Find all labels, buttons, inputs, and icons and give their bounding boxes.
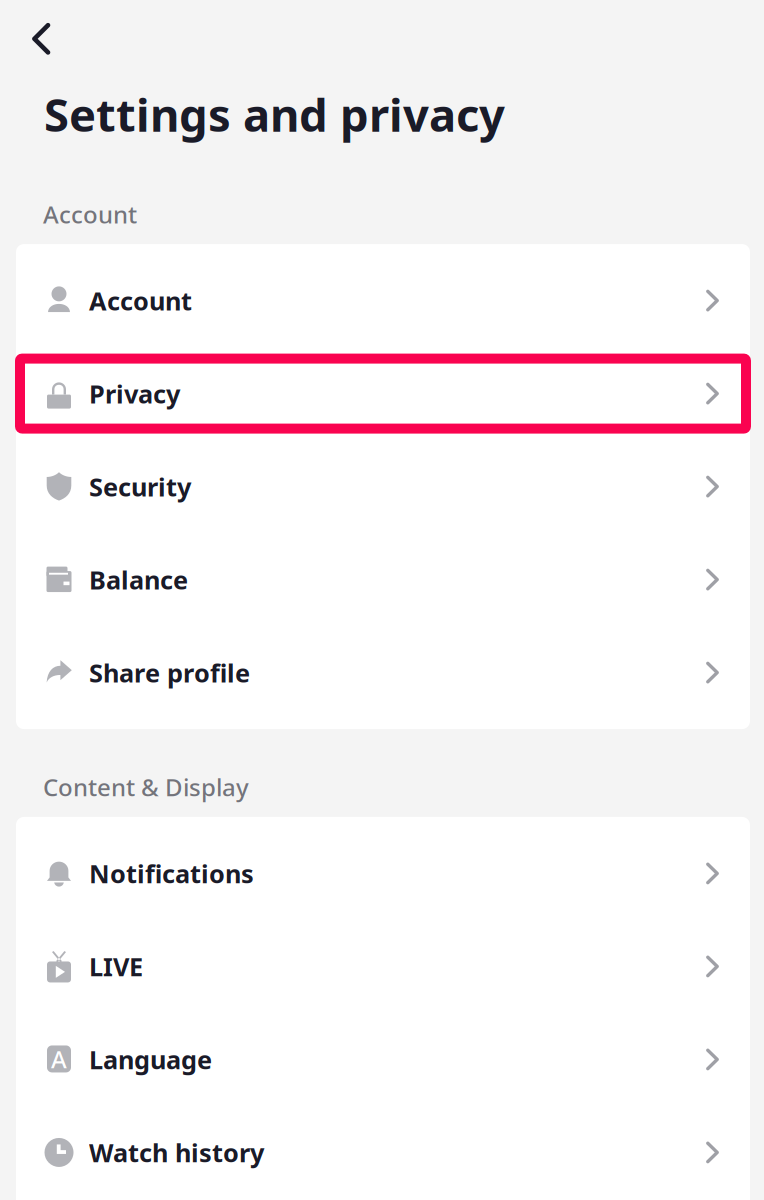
staticText: Language — [89, 1043, 212, 1076]
staticText: LIVE — [89, 950, 143, 983]
staticText: Account — [89, 284, 192, 317]
staticText: A — [51, 1043, 67, 1075]
staticText: Content & Display — [43, 771, 249, 803]
button[interactable]: Security — [16, 440, 750, 533]
staticText: Settings and privacy — [44, 84, 505, 144]
button[interactable]: Notifications — [16, 827, 750, 920]
button[interactable]: Back — [0, 0, 74, 84]
staticText: Security — [89, 470, 191, 503]
button[interactable]: Balance — [16, 533, 750, 626]
button[interactable]: Share profile — [16, 626, 750, 719]
button[interactable]: A — [16, 1013, 750, 1106]
button[interactable]: Privacy — [16, 347, 750, 440]
button[interactable]: LIVE — [16, 920, 750, 1013]
staticText: Watch history — [89, 1136, 264, 1169]
staticText: Notifications — [89, 857, 254, 890]
button[interactable]: Watch history — [16, 1106, 750, 1199]
staticText: Share profile — [89, 656, 250, 689]
staticText: Privacy — [89, 377, 180, 410]
staticText: Balance — [89, 563, 188, 596]
staticText: Account — [43, 198, 137, 230]
button[interactable]: Account — [16, 254, 750, 347]
